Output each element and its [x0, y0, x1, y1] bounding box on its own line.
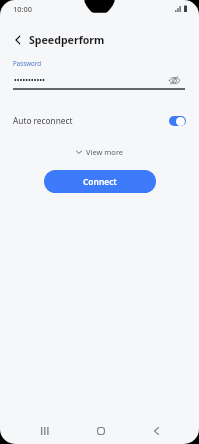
- button[interactable]: Show password: [166, 73, 183, 88]
- button[interactable]: Auto reconnect: [0, 110, 199, 131]
- button[interactable]: Home: [87, 417, 115, 444]
- staticText: Auto reconnect: [13, 115, 73, 126]
- staticText: Speedperform: [29, 33, 105, 47]
- button[interactable]: Back: [142, 417, 170, 444]
- button[interactable]: View more: [72, 144, 128, 160]
- staticText: Connect: [83, 176, 117, 187]
- staticText: 10:00: [13, 4, 32, 14]
- staticText: Password: [13, 59, 41, 67]
- button[interactable]: Recent apps: [31, 417, 59, 444]
- staticText: View more: [86, 147, 124, 157]
- button[interactable]: Connect: [44, 170, 156, 193]
- button[interactable]: Navigate up: [8, 30, 28, 50]
